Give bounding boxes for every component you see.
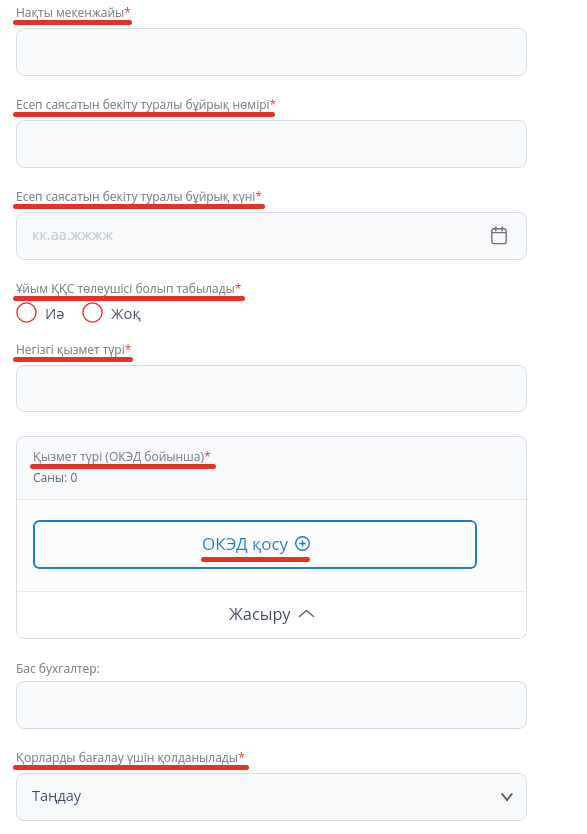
staticText: Таңдау	[32, 786, 82, 806]
staticText: Қызмет түрі (ОКЭД бойынша)*	[33, 448, 211, 464]
button[interactable]: Иә	[16, 302, 65, 323]
staticText: Иә	[45, 303, 65, 323]
staticText: Нақты мекенжайы*	[16, 4, 131, 20]
button[interactable]: кк.аа.жжжж	[16, 212, 527, 260]
staticText: Саны: 0	[33, 469, 78, 485]
button[interactable]	[16, 365, 527, 412]
button[interactable]	[16, 28, 527, 76]
staticText: Жоқ	[111, 303, 141, 323]
staticText: Негізгі қызмет түрі*	[16, 341, 132, 357]
staticText: Ұйым ҚҚС төлеушісі болып табылады*	[16, 280, 242, 296]
staticText: Бас бухгалтер:	[16, 660, 100, 676]
button[interactable]	[16, 120, 527, 168]
staticText: Есеп саясатын бекіту туралы бұйрық күні*	[16, 188, 263, 204]
button[interactable]	[16, 681, 527, 729]
button[interactable]: Таңдау	[16, 773, 527, 821]
staticText: кк.аа.жжжж	[32, 225, 113, 245]
button[interactable]: Күнтізбені ашу	[489, 226, 509, 246]
staticText: Жасыру	[229, 602, 291, 624]
button[interactable]: Жоқ	[82, 302, 141, 323]
staticText: Қорларды бағалау үшін қолданылады*	[16, 749, 245, 765]
button[interactable]: Жасыру	[16, 592, 527, 639]
staticText: Есеп саясатын бекіту туралы бұйрық нөмір…	[16, 96, 277, 112]
button[interactable]: ОКЭД қосу	[33, 520, 477, 569]
staticText: ОКЭД қосу	[202, 532, 289, 555]
